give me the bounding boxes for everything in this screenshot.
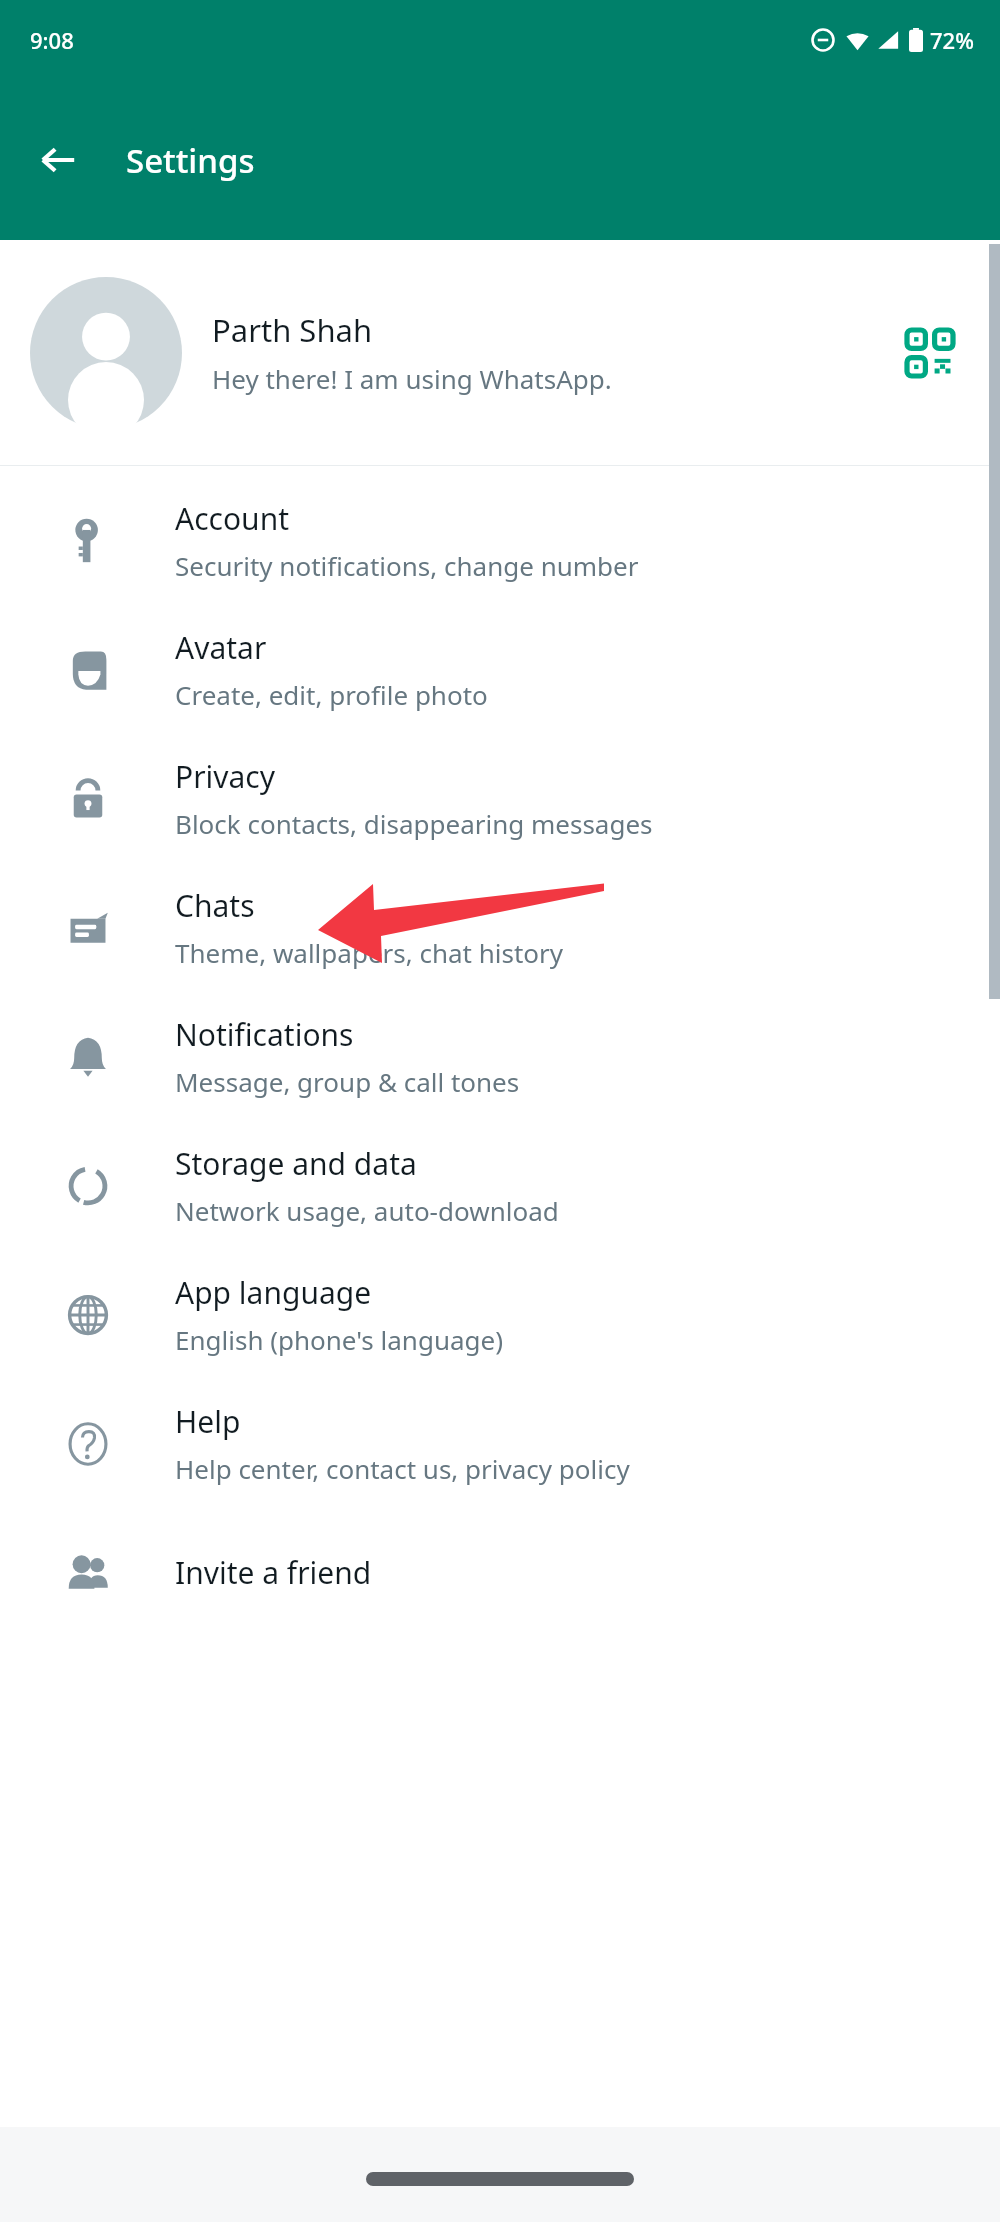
button[interactable]: QR code bbox=[890, 313, 970, 393]
staticText: Network usage, auto-download bbox=[175, 1193, 559, 1228]
staticText: Create, edit, profile photo bbox=[175, 677, 488, 712]
staticText: Privacy bbox=[175, 756, 276, 797]
staticText: Theme, wallpapers, chat history bbox=[175, 935, 564, 970]
staticText: Parth Shah bbox=[212, 309, 373, 351]
button[interactable]: Help bbox=[0, 1379, 1000, 1508]
staticText: Hey there! I am using WhatsApp. bbox=[212, 361, 612, 396]
button[interactable]: App language bbox=[0, 1250, 1000, 1379]
staticText: App language bbox=[175, 1272, 372, 1313]
staticText: Message, group & call tones bbox=[175, 1064, 520, 1099]
staticText: Avatar bbox=[175, 627, 267, 668]
staticText: English (phone's language) bbox=[175, 1322, 504, 1357]
staticText: Help center, contact us, privacy policy bbox=[175, 1451, 630, 1486]
button[interactable]: Privacy bbox=[0, 734, 1000, 863]
staticText: Account bbox=[175, 498, 290, 539]
button[interactable]: Avatar bbox=[0, 605, 1000, 734]
button[interactable]: Account bbox=[0, 476, 1000, 605]
staticText: Storage and data bbox=[175, 1143, 417, 1184]
button[interactable]: Chats bbox=[0, 863, 1000, 992]
staticText: Notifications bbox=[175, 1014, 354, 1055]
staticText: Block contacts, disappearing messages bbox=[175, 806, 653, 841]
staticText: 9:08 bbox=[30, 25, 74, 55]
button[interactable]: Notifications bbox=[0, 992, 1000, 1121]
staticText: Invite a friend bbox=[175, 1552, 372, 1593]
button[interactable]: Invite a friend bbox=[0, 1508, 1000, 1637]
staticText: Help bbox=[175, 1401, 241, 1442]
staticText: Settings bbox=[126, 138, 255, 183]
staticText: 72% bbox=[930, 25, 974, 55]
staticText: Security notifications, change number bbox=[175, 548, 639, 583]
button[interactable]: Parth Shah bbox=[0, 240, 1000, 465]
button[interactable]: Storage and data bbox=[0, 1121, 1000, 1250]
button[interactable]: Back bbox=[22, 124, 94, 196]
staticText: Chats bbox=[175, 885, 255, 926]
